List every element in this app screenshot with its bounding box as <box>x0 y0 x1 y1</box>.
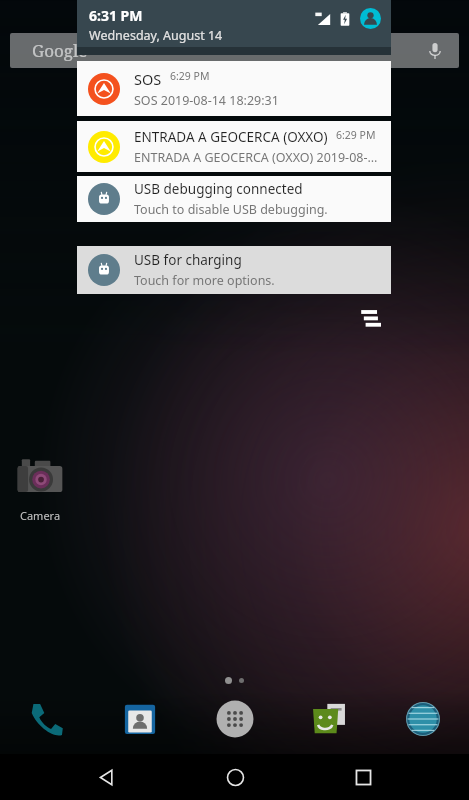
button[interactable]: Phone <box>22 695 70 743</box>
button[interactable]: 6:31 PM <box>77 0 391 47</box>
button[interactable]: Clear all notifications <box>354 302 386 334</box>
button[interactable]: ENTRADA A GEOCERCA (OXXO) <box>77 121 391 172</box>
staticText: SOS <box>134 69 162 89</box>
staticText: 6:29 PM <box>170 69 210 83</box>
button[interactable]: SOS <box>77 61 391 116</box>
staticText: 6:29 PM <box>336 128 376 142</box>
staticText: 6:31 PM <box>89 6 143 25</box>
staticText: USB debugging connected <box>134 180 303 198</box>
staticText: USB for charging <box>134 251 242 269</box>
button[interactable]: Google <box>10 33 459 68</box>
button[interactable]: Home <box>212 754 258 800</box>
button[interactable]: Contacts <box>116 695 164 743</box>
button[interactable]: Camera <box>8 452 72 523</box>
staticText: ENTRADA A GEOCERCA (OXXO) 2019-08-14 18:… <box>134 149 382 166</box>
staticText: Touch for more options. <box>134 272 275 289</box>
button[interactable]: Recents <box>340 754 386 800</box>
staticText: Camera <box>20 508 61 523</box>
button[interactable]: Voice search <box>423 39 447 63</box>
button[interactable]: USB for charging <box>77 246 391 294</box>
staticText: ENTRADA A GEOCERCA (OXXO) <box>134 128 328 146</box>
staticText: SOS 2019-08-14 18:29:31 <box>134 92 279 109</box>
button[interactable]: User profile <box>360 8 381 29</box>
button[interactable]: USB debugging connected <box>77 176 391 222</box>
button[interactable]: Browser <box>399 695 447 743</box>
staticText: Touch to disable USB debugging. <box>134 201 328 218</box>
staticText: Wednesday, August 14 <box>89 27 223 44</box>
button[interactable]: Apps <box>211 695 259 743</box>
button[interactable]: Back <box>83 754 129 800</box>
staticText: Google <box>32 39 88 62</box>
button[interactable]: Messaging <box>305 695 353 743</box>
